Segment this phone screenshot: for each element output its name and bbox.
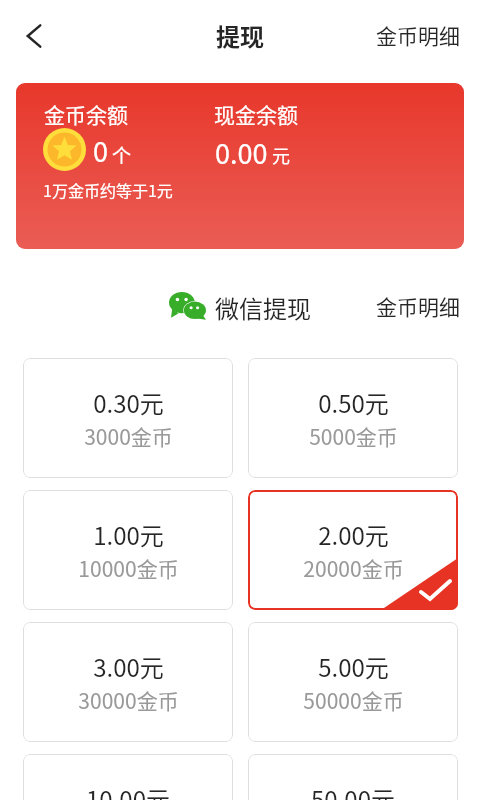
staticText: 提现 — [216, 18, 264, 53]
button[interactable]: Back — [10, 12, 58, 60]
staticText: 20000金币 — [303, 553, 404, 583]
staticText: 30000金币 — [78, 685, 179, 715]
staticText: 微信提现 — [215, 290, 311, 325]
button[interactable]: 0.50元 — [248, 358, 458, 478]
staticText: 现金余额 — [214, 99, 298, 129]
staticText: 金币明细 — [376, 20, 460, 50]
staticText: 0.50元 — [318, 385, 389, 420]
staticText: 金币余额 — [44, 99, 128, 129]
staticText: 0.30元 — [93, 385, 164, 420]
staticText: 3.00元 — [93, 649, 164, 684]
staticText: 金币明细 — [376, 291, 460, 321]
button[interactable]: 3.00元 — [23, 622, 233, 742]
staticText: 10000金币 — [78, 553, 179, 583]
button[interactable]: 微信提现 — [169, 289, 311, 324]
button[interactable]: 金币明细 — [368, 285, 468, 327]
staticText: 50000金币 — [303, 685, 404, 715]
staticText: 2.00元 — [318, 517, 389, 552]
staticText: 1万金币约等于1元 — [43, 178, 173, 201]
staticText: 5.00元 — [318, 649, 389, 684]
button[interactable]: 金币明细 — [368, 14, 468, 56]
button[interactable]: 2.00元 — [248, 490, 458, 610]
button[interactable]: 50.00元 — [248, 754, 458, 800]
button[interactable]: 0.30元 — [23, 358, 233, 478]
staticText: 50.00元 — [311, 781, 395, 800]
staticText: 个 — [112, 141, 132, 169]
staticText: 3000金币 — [84, 421, 173, 451]
staticText: 5000金币 — [309, 421, 398, 451]
button[interactable]: 10.00元 — [23, 754, 233, 800]
button[interactable]: 5.00元 — [248, 622, 458, 742]
button[interactable]: 1.00元 — [23, 490, 233, 610]
staticText: 0.00 — [215, 133, 268, 172]
staticText: 1.00元 — [93, 517, 164, 552]
staticText: 10.00元 — [86, 781, 170, 800]
staticText: 0 — [93, 131, 108, 170]
staticText: 元 — [272, 142, 290, 168]
